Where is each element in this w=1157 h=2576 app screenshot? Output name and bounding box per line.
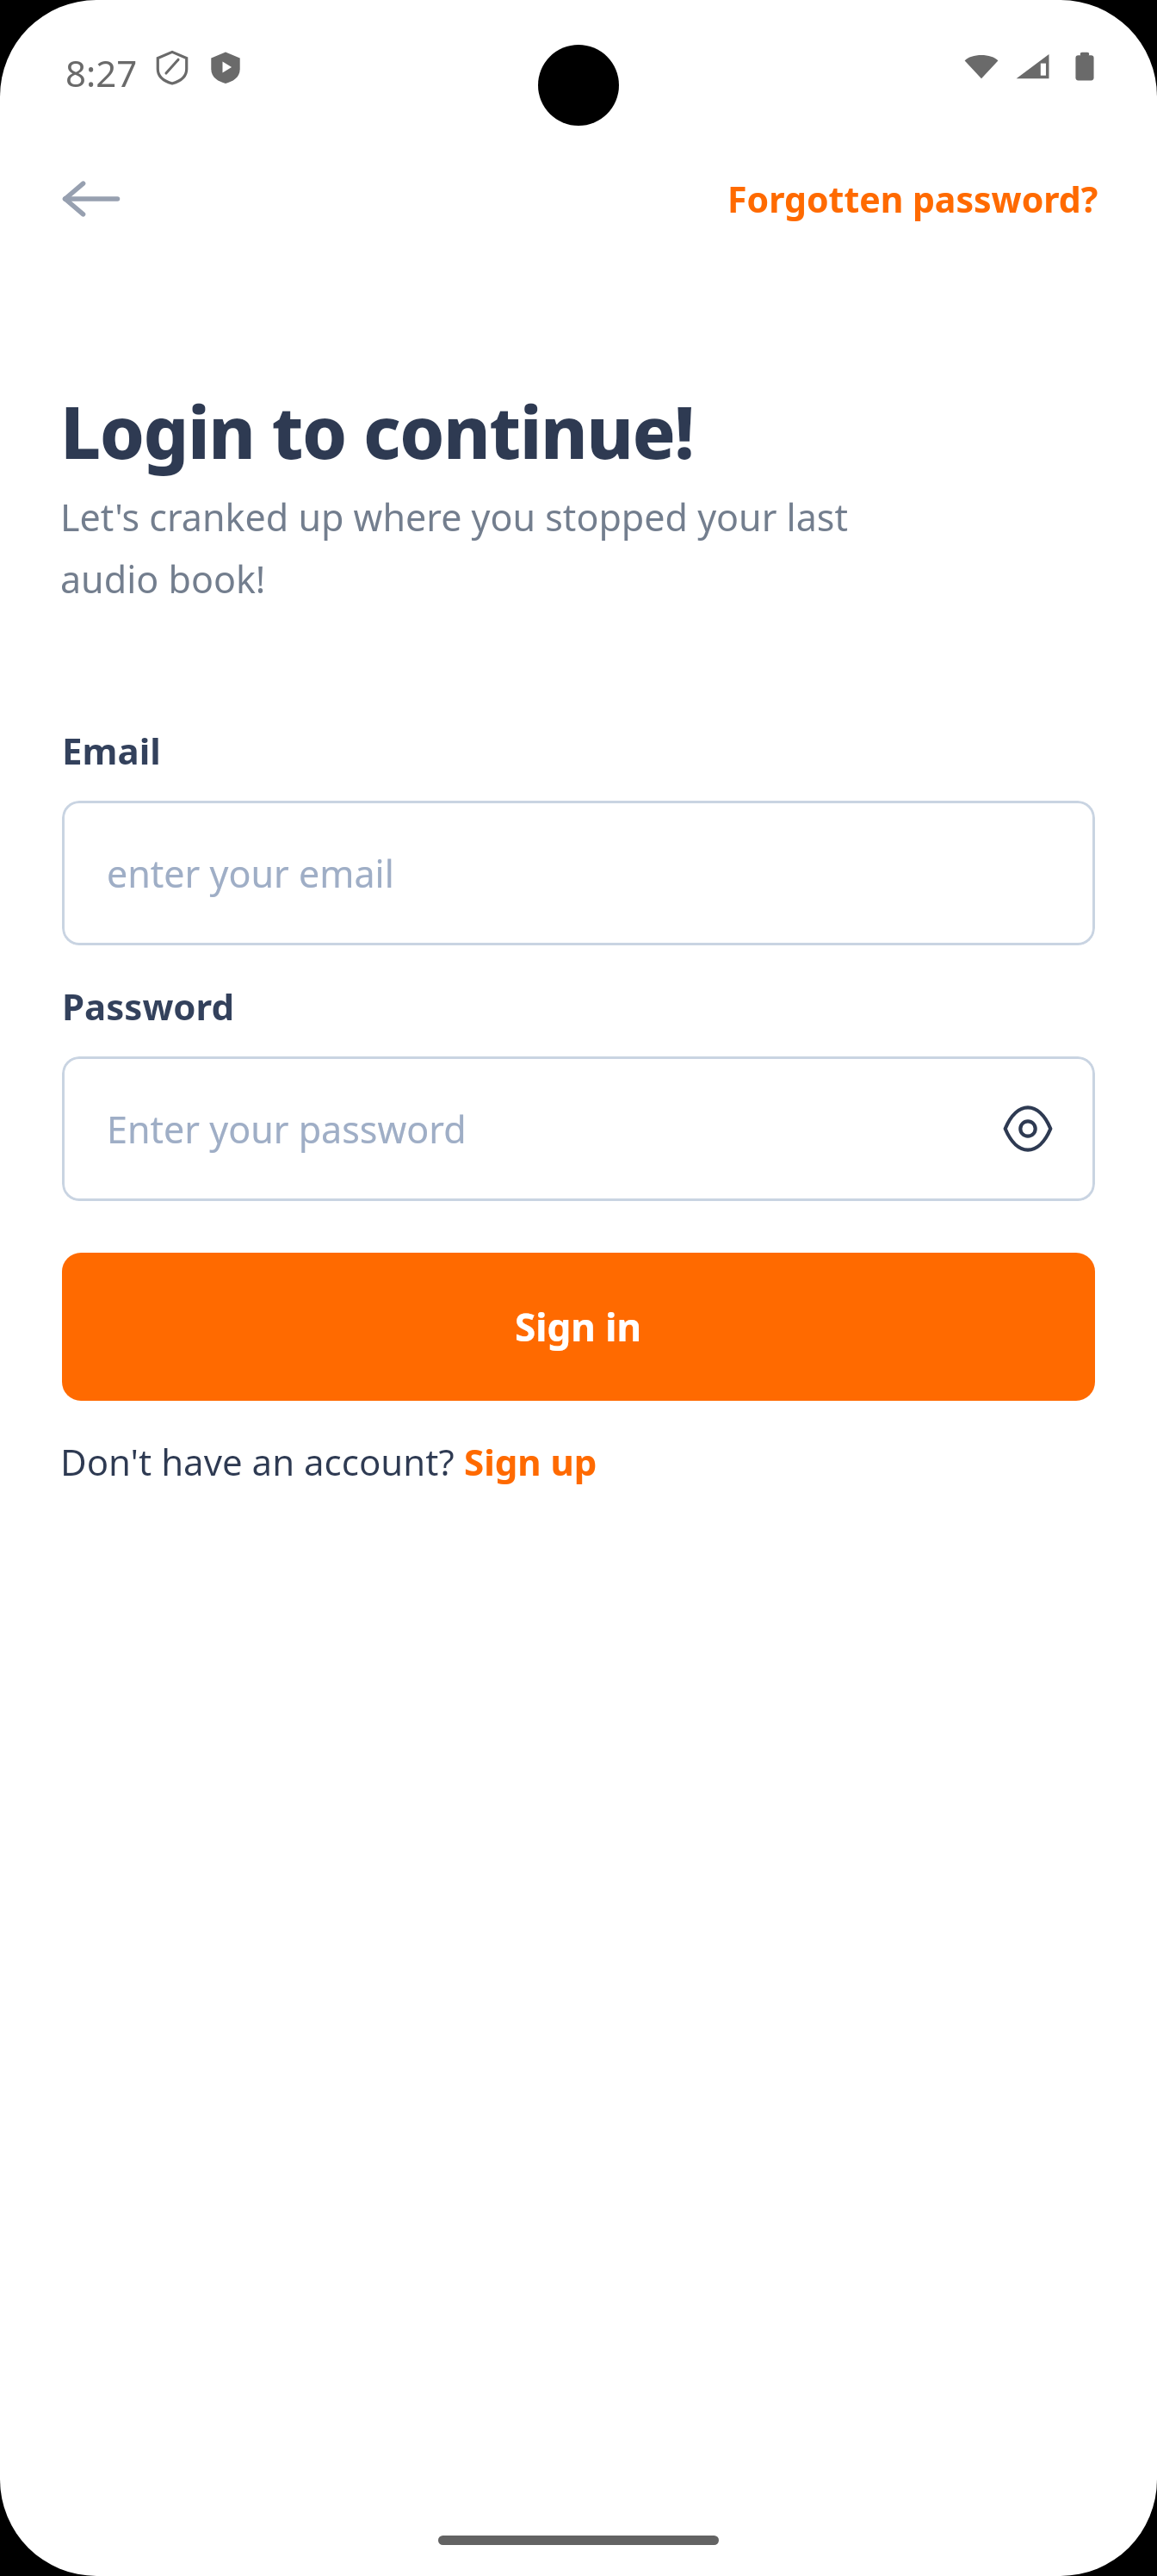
button[interactable]: Sign up: [464, 1437, 597, 1486]
staticText: 8:27: [65, 48, 138, 97]
staticText: Sign up: [464, 1437, 597, 1486]
button[interactable]: enter your email: [62, 801, 1095, 945]
staticText: Password: [62, 981, 235, 1031]
button[interactable]: Enter your password: [62, 1056, 1095, 1201]
button[interactable]: Back: [53, 162, 127, 236]
staticText: Email: [62, 726, 161, 775]
staticText: Sign in: [515, 1301, 642, 1353]
staticText: Don't have an account?: [60, 1437, 464, 1486]
button[interactable]: Sign in: [62, 1253, 1095, 1401]
staticText: Forgotten password?: [727, 175, 1098, 223]
button[interactable]: Forgotten password?: [722, 168, 1104, 230]
staticText: Login to continue!: [60, 382, 694, 480]
staticText: Enter your password: [107, 1104, 467, 1155]
staticText: enter your email: [107, 848, 394, 899]
button[interactable]: Show password: [988, 1089, 1067, 1168]
staticText: Let's cranked up where you stopped your …: [60, 492, 848, 604]
